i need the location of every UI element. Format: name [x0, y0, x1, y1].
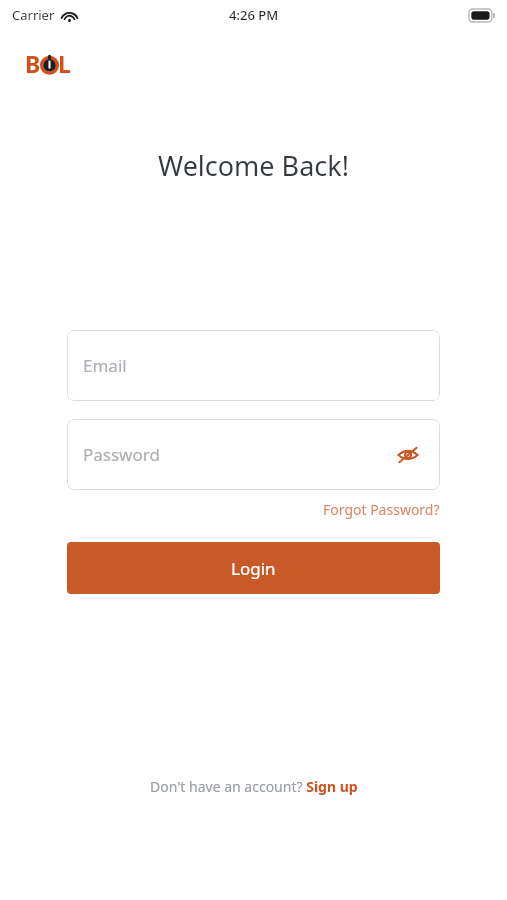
staticText: 4:26 PM [229, 6, 279, 24]
button[interactable]: Show password [390, 437, 426, 473]
button[interactable]: Email [67, 330, 440, 401]
button[interactable]: Forgot Password? [323, 498, 440, 521]
staticText: L [58, 48, 71, 79]
staticText: Don't have an account? Sign up [150, 777, 358, 796]
staticText: Login [231, 557, 276, 580]
button[interactable]: Password [67, 419, 440, 490]
staticText: Carrier [12, 6, 55, 24]
staticText: Email [83, 354, 127, 377]
button[interactable]: Login [67, 542, 440, 594]
staticText: Password [83, 443, 160, 466]
staticText: B [25, 48, 41, 79]
staticText: Forgot Password? [323, 500, 440, 519]
staticText: Welcome Back! [158, 147, 349, 184]
button[interactable]: Don't have an account? Sign up [142, 773, 366, 800]
